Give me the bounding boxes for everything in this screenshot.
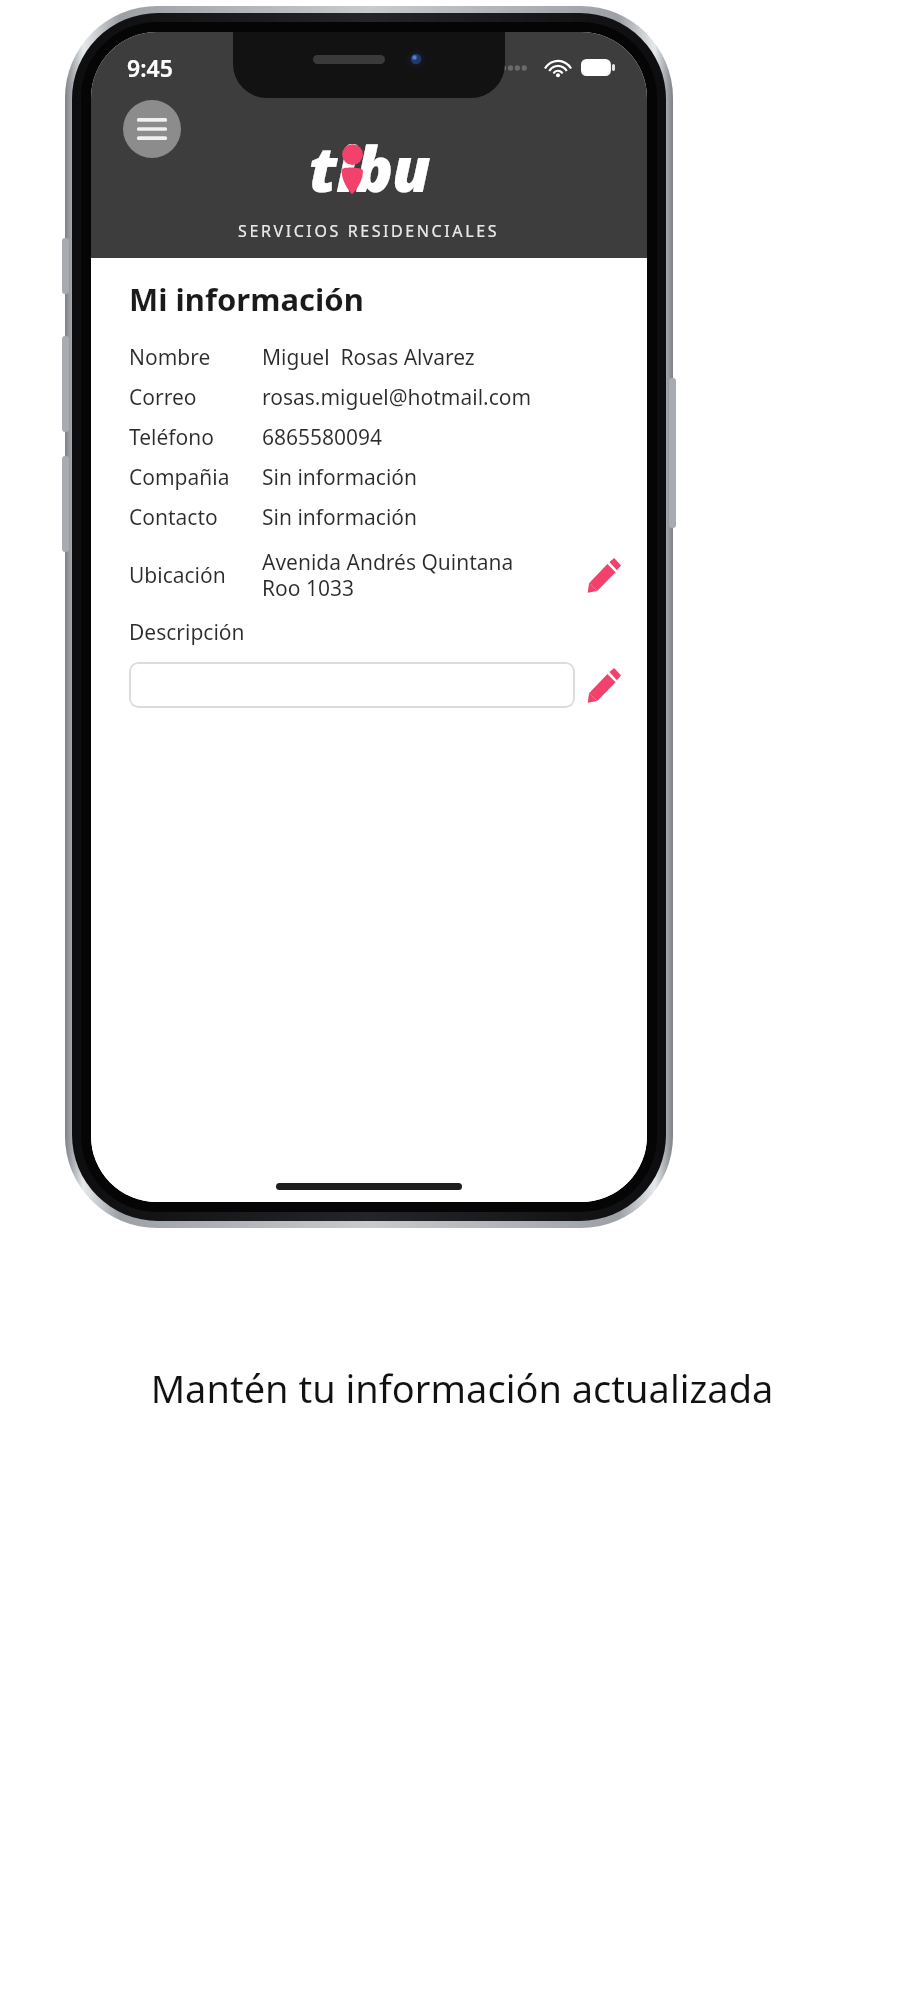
button[interactable]: Editar descripción xyxy=(575,656,633,714)
staticText: tibu xyxy=(309,126,430,210)
staticText: Teléfono xyxy=(129,423,262,452)
staticText: Ubicación xyxy=(129,561,262,590)
staticText: Mi información xyxy=(129,278,364,320)
staticText: Sin información xyxy=(262,503,417,532)
button[interactable]: Teléfono xyxy=(129,423,633,452)
button[interactable] xyxy=(129,662,575,708)
button[interactable]: Nombre xyxy=(129,343,633,372)
staticText: Miguel Rosas Alvarez xyxy=(262,343,475,372)
staticText: Mantén tu información actualizada xyxy=(0,1362,924,1414)
button[interactable]: Menú xyxy=(123,100,181,158)
staticText: SERVICIOS RESIDENCIALES xyxy=(238,220,500,242)
staticText: Avenida Andrés Quintana Roo 1033 xyxy=(262,548,575,603)
button[interactable]: Contacto xyxy=(129,503,633,532)
button[interactable]: Compañia xyxy=(129,463,633,492)
staticText: 6865580094 xyxy=(262,423,383,452)
staticText: rosas.miguel@hotmail.com xyxy=(262,383,532,412)
staticText: Correo xyxy=(129,383,262,412)
staticText: Nombre xyxy=(129,343,262,372)
button[interactable]: Editar ubicación xyxy=(575,546,633,604)
staticText: 9:45 xyxy=(127,52,173,83)
staticText: Compañia xyxy=(129,463,262,492)
button[interactable]: Correo xyxy=(129,383,633,412)
staticText: Contacto xyxy=(129,503,262,532)
staticText: Descripción xyxy=(129,618,245,647)
staticText: Sin información xyxy=(262,463,417,492)
